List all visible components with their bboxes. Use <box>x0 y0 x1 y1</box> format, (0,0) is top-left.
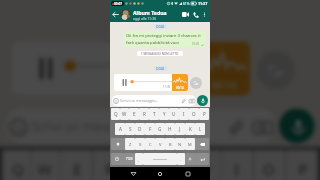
staticText: OGGI <box>147 19 176 32</box>
staticText: 00:07 <box>114 2 123 6</box>
button[interactable]: U <box>169 108 179 120</box>
staticText: S <box>129 126 132 132</box>
button[interactable]: Emoji <box>111 153 123 165</box>
staticText: V <box>159 142 162 147</box>
staticText: , <box>138 157 140 162</box>
staticText: 10:35 <box>192 42 200 46</box>
button[interactable]: Scrivi un messaggio... <box>112 95 196 106</box>
staticText: Y <box>163 111 166 117</box>
button[interactable]: Record voice message <box>197 95 208 106</box>
button[interactable]: Shift <box>111 138 125 150</box>
button[interactable]: Enter <box>195 153 209 165</box>
staticText: Album Tedua <box>133 9 167 16</box>
button[interactable]: Space <box>143 153 177 165</box>
button[interactable]: B <box>165 138 175 150</box>
button[interactable]: G <box>155 123 165 135</box>
button[interactable]: Y <box>159 108 169 120</box>
staticText: M <box>188 142 192 147</box>
button[interactable]: U <box>189 150 221 180</box>
button[interactable]: Forward <box>190 77 202 89</box>
button[interactable]: E <box>129 108 139 120</box>
button[interactable]: N <box>175 138 185 150</box>
staticText: 61% <box>183 2 190 6</box>
staticText: P <box>298 159 308 178</box>
staticText: H <box>168 126 172 132</box>
staticText: K <box>189 126 192 132</box>
button[interactable]: . <box>177 153 185 165</box>
button[interactable]: Video call <box>180 9 191 20</box>
staticText: E <box>133 111 136 117</box>
button[interactable]: Y <box>157 150 189 180</box>
staticText: J <box>179 126 181 132</box>
button[interactable]: H <box>165 123 175 135</box>
button[interactable]: Q <box>2 150 31 180</box>
button[interactable]: Q <box>111 108 120 120</box>
staticText: 11:37 <box>198 1 208 6</box>
staticText: W <box>122 111 127 117</box>
button[interactable]: Back <box>128 169 138 179</box>
staticText: 00:14 <box>176 86 184 90</box>
staticText: R <box>143 111 146 117</box>
staticText: I <box>234 159 240 178</box>
staticText: 11:35 <box>170 77 195 89</box>
button[interactable]: M <box>185 138 195 150</box>
staticText: Scrivi un messaggio... <box>31 118 157 134</box>
button[interactable]: R <box>139 108 149 120</box>
staticText: B <box>169 142 172 147</box>
button[interactable]: I <box>221 150 253 180</box>
button[interactable]: V <box>155 138 165 150</box>
button[interactable]: J <box>175 123 185 135</box>
button[interactable]: P <box>199 108 209 120</box>
button[interactable]: O <box>253 150 286 180</box>
button[interactable]: T <box>125 150 157 180</box>
staticText: C <box>149 142 152 147</box>
button[interactable]: Home <box>155 169 165 179</box>
button[interactable]: S <box>125 123 135 135</box>
button[interactable]: L <box>195 123 205 135</box>
button[interactable]: C <box>145 138 155 150</box>
staticText: Y <box>170 159 179 178</box>
button[interactable]: O <box>189 108 199 120</box>
button[interactable]: I <box>179 108 189 120</box>
staticText: F <box>149 126 152 132</box>
staticText: A <box>119 126 122 132</box>
button[interactable]: W <box>31 150 60 180</box>
staticText: T <box>137 159 147 178</box>
button[interactable]: Recents <box>183 169 193 179</box>
staticText: P <box>203 111 206 117</box>
button[interactable]: X <box>135 138 145 150</box>
button[interactable]: D <box>135 123 145 135</box>
button[interactable]: Back <box>111 10 120 19</box>
button[interactable]: Contact photo <box>120 9 131 20</box>
button[interactable]: F <box>145 123 155 135</box>
staticText: D <box>138 126 142 132</box>
button[interactable]: Call <box>191 10 201 20</box>
button[interactable]: R <box>92 150 125 180</box>
button[interactable]: , <box>135 153 143 165</box>
button[interactable]: More options <box>201 11 208 18</box>
button[interactable]: K <box>185 123 195 135</box>
button[interactable]: E <box>60 150 92 180</box>
button[interactable]: Record voice message <box>279 108 314 143</box>
button[interactable]: A <box>115 123 125 135</box>
staticText: R <box>105 159 115 178</box>
staticText: W <box>38 159 54 178</box>
button[interactable]: T <box>149 108 159 120</box>
button[interactable]: ?123 <box>123 153 135 165</box>
staticText: T <box>153 111 156 117</box>
staticText: Scrivi un messaggio... <box>120 98 159 103</box>
button[interactable]: Scrivi un messaggio... <box>5 108 276 143</box>
staticText: U <box>199 159 211 178</box>
staticText: oggi alle 11:36 <box>133 16 157 21</box>
staticText: farò quanta pubblicità vuoi <box>126 40 179 46</box>
button[interactable]: Backspace <box>195 138 209 150</box>
staticText: L <box>199 126 202 132</box>
staticText: OGGI <box>156 25 165 29</box>
staticText: G <box>158 126 162 132</box>
button[interactable]: P <box>286 150 318 180</box>
button[interactable]: Z <box>125 138 135 150</box>
button[interactable]: W <box>120 108 129 120</box>
button[interactable]: Voice input <box>185 153 195 165</box>
staticText: 1 MESSAGGIO NON LETTO <box>141 52 179 56</box>
